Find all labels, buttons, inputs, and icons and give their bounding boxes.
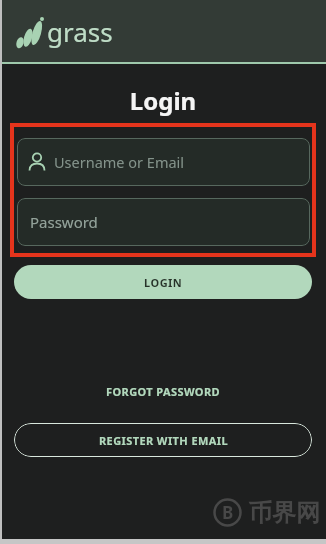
button[interactable]: Password bbox=[17, 198, 310, 246]
button[interactable]: LOGIN bbox=[14, 265, 312, 299]
staticText: Password bbox=[30, 212, 98, 232]
staticText: 币界网 bbox=[248, 498, 320, 528]
staticText: B bbox=[222, 501, 234, 524]
button[interactable]: FORGOT PASSWORD bbox=[0, 380, 326, 402]
button[interactable]: REGISTER WITH EMAIL bbox=[14, 423, 312, 457]
staticText: FORGOT PASSWORD bbox=[106, 384, 221, 399]
button[interactable]: Username or Email bbox=[17, 138, 310, 186]
staticText: Username or Email bbox=[54, 152, 185, 172]
staticText: LOGIN bbox=[144, 275, 183, 290]
staticText: REGISTER WITH EMAIL bbox=[99, 433, 228, 448]
staticText: Login bbox=[0, 84, 326, 117]
staticText: grass bbox=[47, 14, 113, 49]
